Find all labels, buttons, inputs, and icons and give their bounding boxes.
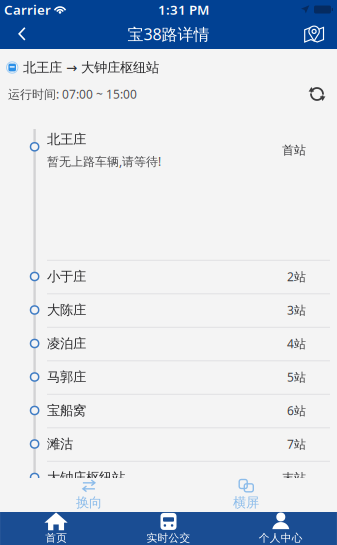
button[interactable]: 滩沽 <box>0 428 337 461</box>
staticText: 小于庄 <box>47 268 86 285</box>
staticText: 1:31 PM <box>158 1 209 18</box>
staticText: 凌泊庄 <box>47 335 86 352</box>
staticText: 3站 <box>287 302 306 318</box>
staticText: 横屏 <box>233 494 259 511</box>
button[interactable]: Map <box>293 19 335 49</box>
button[interactable]: 首页 <box>0 512 112 545</box>
staticText: 5站 <box>287 369 306 385</box>
staticText: 首页 <box>45 531 67 544</box>
staticText: 7站 <box>287 436 306 452</box>
button[interactable]: 换向 <box>51 478 127 512</box>
button[interactable]: Back <box>1 19 43 49</box>
staticText: 末站 <box>282 470 306 485</box>
staticText: 大钟庄枢纽站 <box>47 469 125 486</box>
staticText: 个人中心 <box>259 531 303 544</box>
button[interactable]: 实时公交 <box>112 512 225 545</box>
staticText: 宝船窝 <box>47 402 86 419</box>
staticText: 运行时间: 07:00 ~ 15:00 <box>8 86 137 102</box>
staticText: 宝38路详情 <box>127 23 209 45</box>
staticText: 北王庄 <box>47 131 86 147</box>
staticText: 滩沽 <box>47 436 73 452</box>
button[interactable]: 马郭庄 <box>0 361 337 394</box>
staticText: 2站 <box>287 269 306 284</box>
button[interactable]: 宝船窝 <box>0 394 337 427</box>
staticText: 6站 <box>287 403 306 418</box>
button[interactable]: 北王庄 <box>0 101 337 257</box>
staticText: 实时公交 <box>146 531 190 544</box>
button[interactable]: 凌泊庄 <box>0 327 337 360</box>
button[interactable]: 横屏 <box>208 478 284 512</box>
staticText: 4站 <box>287 336 306 351</box>
button[interactable]: 大钟庄枢纽站 <box>0 461 337 494</box>
staticText: 马郭庄 <box>47 369 86 385</box>
staticText: 大陈庄 <box>47 302 86 318</box>
staticText: 北王庄 → 大钟庄枢纽站 <box>23 59 159 76</box>
button[interactable]: 小于庄 <box>0 260 337 293</box>
staticText: Carrier <box>4 1 51 18</box>
button[interactable]: 个人中心 <box>225 512 337 545</box>
button[interactable]: Refresh <box>309 86 325 102</box>
button[interactable]: 大陈庄 <box>0 294 337 327</box>
staticText: 换向 <box>76 494 102 511</box>
staticText: 首站 <box>282 143 306 157</box>
staticText: 暂无上路车辆,请等待! <box>47 153 161 169</box>
